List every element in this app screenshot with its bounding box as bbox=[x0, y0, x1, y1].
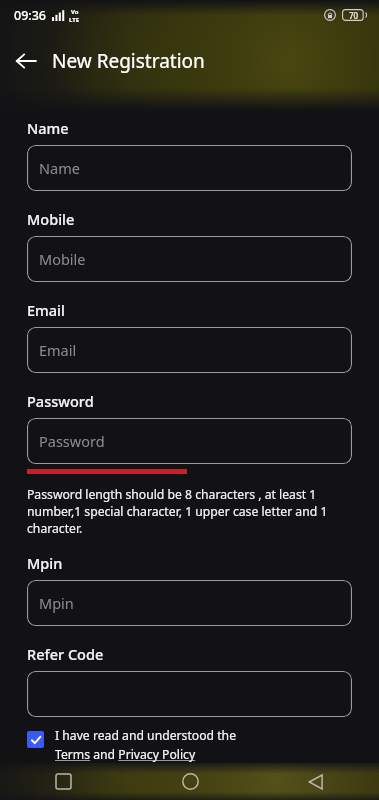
staticText: Vo bbox=[71, 8, 79, 16]
button[interactable] bbox=[27, 671, 352, 717]
staticText: Password bbox=[39, 431, 105, 451]
button[interactable]: Accept terms bbox=[27, 727, 352, 763]
button[interactable]: Back bbox=[0, 35, 52, 87]
button[interactable]: Back bbox=[253, 763, 379, 800]
staticText: Email bbox=[39, 340, 77, 360]
other: Accept terms bbox=[27, 731, 44, 748]
button[interactable]: Password bbox=[27, 418, 352, 464]
button[interactable]: Name bbox=[27, 145, 352, 191]
staticText: Refer Code bbox=[27, 644, 104, 664]
staticText: Name bbox=[27, 118, 69, 138]
staticText: New Registration bbox=[52, 48, 205, 74]
staticText: 70 bbox=[349, 10, 359, 21]
button[interactable]: Recent apps bbox=[0, 763, 127, 800]
button[interactable]: Mpin bbox=[27, 580, 352, 626]
staticText: Password length should be 8 characters ,… bbox=[27, 486, 352, 537]
staticText: Mpin bbox=[39, 593, 74, 613]
staticText: Email bbox=[27, 300, 65, 320]
staticText: Mpin bbox=[27, 553, 63, 573]
button[interactable]: Home bbox=[127, 763, 253, 800]
staticText: Terms and Privacy Policy bbox=[55, 746, 196, 763]
staticText: Password bbox=[27, 391, 94, 411]
staticText: LTE bbox=[69, 16, 80, 24]
staticText: Name bbox=[39, 158, 80, 178]
button[interactable]: Email bbox=[27, 327, 352, 373]
staticText: 09:36 bbox=[14, 7, 47, 24]
staticText: Mobile bbox=[39, 249, 86, 269]
staticText: I have read and understood the bbox=[55, 727, 237, 744]
button[interactable]: Mobile bbox=[27, 236, 352, 282]
staticText: Mobile bbox=[27, 209, 75, 229]
